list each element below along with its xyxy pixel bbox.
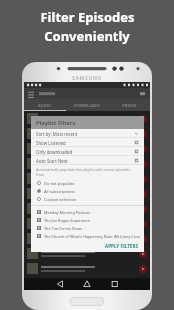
- button[interactable]: Home: [70, 297, 104, 306]
- staticText: DOWNLOADS: [74, 103, 100, 108]
- button[interactable]: Play: [139, 130, 147, 138]
- staticText: SAMSUNG: [72, 75, 103, 82]
- staticText: AUDIO: [38, 103, 52, 108]
- button[interactable]: Play: [139, 190, 147, 198]
- button[interactable]: Play: [24, 186, 150, 201]
- button[interactable]: AUDIO: [24, 99, 66, 111]
- button[interactable]: Play: [139, 115, 147, 123]
- button[interactable]: Play: [24, 126, 150, 141]
- staticText: Playlist Filters: [36, 119, 76, 127]
- staticText: All subscriptions: [44, 189, 75, 194]
- staticText: Only downloaded: [36, 149, 73, 155]
- staticText: Do not populate: [44, 181, 75, 186]
- button[interactable]: Play: [24, 111, 150, 126]
- staticText: APPLY FILTERS: [105, 243, 138, 249]
- button[interactable]: Play: [24, 156, 150, 171]
- button[interactable]: All subscriptions: [31, 187, 144, 195]
- button[interactable]: APPLY FILTERS: [105, 243, 138, 249]
- button[interactable]: Play: [24, 261, 150, 276]
- button[interactable]: Play: [139, 235, 147, 243]
- button[interactable]: The Joe Rogan Experience: [31, 216, 144, 224]
- button[interactable]: The Tim Ferriss Show: [31, 224, 144, 232]
- button[interactable]: Monday Morning Podcast: [31, 208, 144, 216]
- staticText: Custom selection: [44, 197, 77, 202]
- button[interactable]: Sort by: Most recent: [31, 129, 144, 138]
- button[interactable]: Play: [24, 246, 150, 261]
- button[interactable]: Play: [24, 216, 150, 231]
- button[interactable]: Play: [139, 250, 147, 258]
- button[interactable]: Play: [139, 265, 147, 273]
- staticText: VIDEOS: [122, 103, 137, 108]
- button[interactable]: Play: [139, 175, 147, 183]
- button[interactable]: The Church of What's Happening Now: With…: [31, 232, 144, 240]
- staticText: Filter Episodes: [40, 8, 135, 26]
- staticText: The Church of What's Happening Now: With…: [44, 234, 144, 239]
- button[interactable]: Custom selection: [31, 195, 144, 203]
- button[interactable]: Play: [24, 201, 150, 216]
- staticText: Automatically populate the playlist with…: [36, 167, 139, 177]
- button[interactable]: Auto Start Next: [31, 156, 144, 165]
- staticText: The Tim Ferriss Show: [44, 226, 82, 231]
- button[interactable]: Play: [139, 220, 147, 228]
- button[interactable]: Play: [24, 231, 150, 246]
- button[interactable]: Only downloaded: [31, 147, 144, 156]
- staticText: Conveniently: [44, 27, 130, 45]
- button[interactable]: DOWNLOADS: [66, 99, 108, 111]
- staticText: Sort by: Most recent: [36, 131, 78, 137]
- button[interactable]: Show Listened: [31, 138, 144, 147]
- button[interactable]: Play: [24, 141, 150, 156]
- button[interactable]: VIDEOS: [108, 99, 150, 111]
- button[interactable]: Play: [139, 160, 147, 168]
- staticText: Show Listened: [36, 140, 66, 146]
- button[interactable]: Play: [139, 205, 147, 213]
- staticText: Monday Morning Podcast: [44, 210, 90, 215]
- staticText: Auto Start Next: [36, 158, 68, 164]
- button[interactable]: Play: [24, 171, 150, 186]
- button[interactable]: Play: [139, 145, 147, 153]
- button[interactable]: Do not populate: [31, 179, 144, 187]
- staticText: The Joe Rogan Experience: [44, 218, 91, 223]
